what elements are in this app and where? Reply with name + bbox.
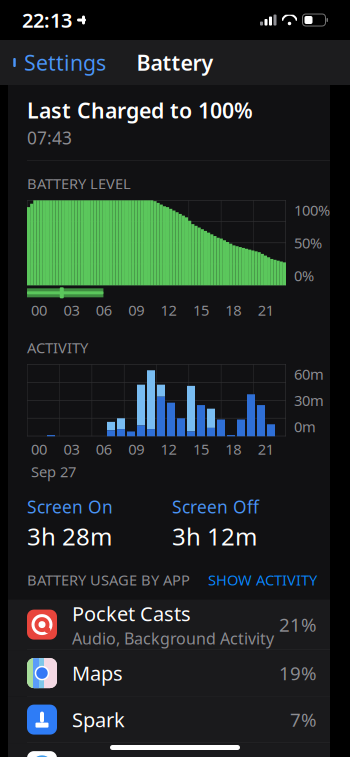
staticText: 15 (193, 300, 209, 320)
staticText: Battery (136, 48, 213, 77)
staticText: 22:13 (22, 7, 72, 33)
staticText: BATTERY USAGE BY APP (27, 570, 190, 590)
staticText: 12 (160, 300, 176, 320)
staticText: Settings (24, 48, 106, 77)
staticText: 21 (258, 300, 274, 320)
staticText: SHOW ACTIVITY (208, 570, 317, 590)
staticText: 00 (31, 300, 47, 320)
button[interactable]: Settings (0, 42, 106, 83)
staticText: Pocket Casts (72, 600, 191, 627)
staticText: 09 (128, 300, 144, 320)
button[interactable]: Pocket Casts (8, 600, 330, 650)
staticText: Maps (72, 660, 123, 686)
staticText: Last Charged to 100% (27, 96, 253, 124)
button[interactable]: Spark (8, 697, 330, 743)
staticText: 06 (96, 300, 112, 320)
staticText: 30m (294, 390, 324, 410)
staticText: 03 (63, 300, 79, 320)
staticText: 19% (279, 661, 317, 685)
staticText: BATTERY LEVEL (27, 174, 131, 193)
button[interactable]: SHOW ACTIVITY (208, 566, 317, 594)
staticText: 7% (290, 707, 317, 732)
staticText: Screen On (27, 495, 113, 518)
staticText: 3h 28m (27, 520, 112, 552)
staticText: 09 (128, 439, 144, 459)
staticText: 06 (96, 439, 112, 459)
button[interactable]: Safari (8, 743, 330, 757)
staticText: Spark (72, 706, 125, 733)
staticText: 07:43 (27, 126, 72, 149)
staticText: 18 (225, 439, 241, 459)
staticText: 0m (294, 417, 316, 436)
button[interactable]: Maps (8, 650, 330, 697)
staticText: 3h 12m (172, 520, 257, 552)
staticText: 12 (160, 439, 176, 459)
staticText: 21 (258, 439, 274, 459)
staticText: 60m (294, 364, 324, 384)
staticText: 50% (294, 233, 322, 253)
staticText: 100% (294, 200, 330, 220)
staticText: 21% (279, 612, 317, 637)
staticText: 18 (225, 300, 241, 320)
staticText: 15 (193, 439, 209, 459)
staticText: Screen Off (172, 495, 259, 518)
staticText: Audio, Background Activity (72, 628, 274, 649)
staticText: 0% (294, 266, 314, 285)
staticText: 03 (63, 439, 79, 459)
staticText: 00 (31, 439, 47, 459)
staticText: ACTIVITY (27, 338, 88, 357)
staticText: Sep 27 (31, 462, 76, 481)
